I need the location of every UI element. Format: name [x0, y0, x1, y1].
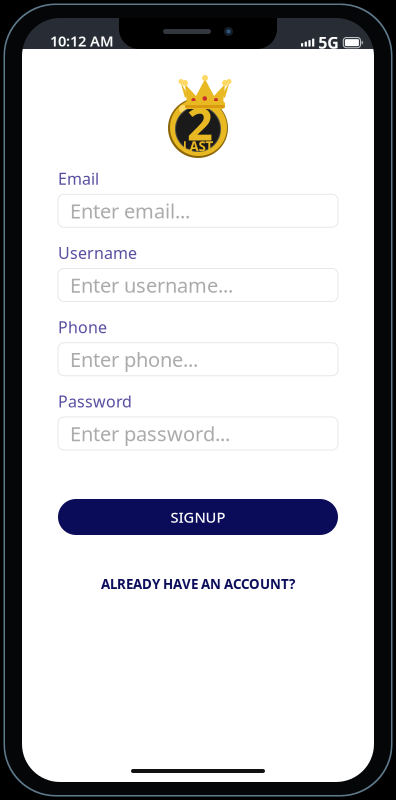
- staticText: ALREADY HAVE AN ACCOUNT?: [101, 575, 295, 593]
- staticText: Enter phone...: [70, 346, 198, 373]
- staticText: Username: [58, 242, 137, 263]
- button[interactable]: Enter email...: [58, 194, 338, 227]
- staticText: Password: [58, 391, 132, 412]
- button[interactable]: Enter username...: [58, 268, 338, 301]
- staticText: 10:12 AM: [50, 31, 114, 50]
- staticText: SIGNUP: [170, 507, 225, 527]
- staticText: Phone: [58, 316, 107, 338]
- button[interactable]: Enter phone...: [58, 343, 338, 376]
- staticText: Enter email...: [70, 197, 190, 224]
- staticText: LAST: [182, 137, 213, 155]
- button[interactable]: Enter password...: [58, 417, 338, 450]
- staticText: 5G: [318, 32, 339, 53]
- staticText: Enter password...: [70, 420, 230, 447]
- staticText: Enter username...: [70, 272, 233, 298]
- staticText: 2: [187, 93, 213, 153]
- button[interactable]: SIGNUP: [58, 499, 338, 535]
- button[interactable]: ALREADY HAVE AN ACCOUNT?: [58, 572, 338, 596]
- staticText: Email: [58, 168, 99, 189]
